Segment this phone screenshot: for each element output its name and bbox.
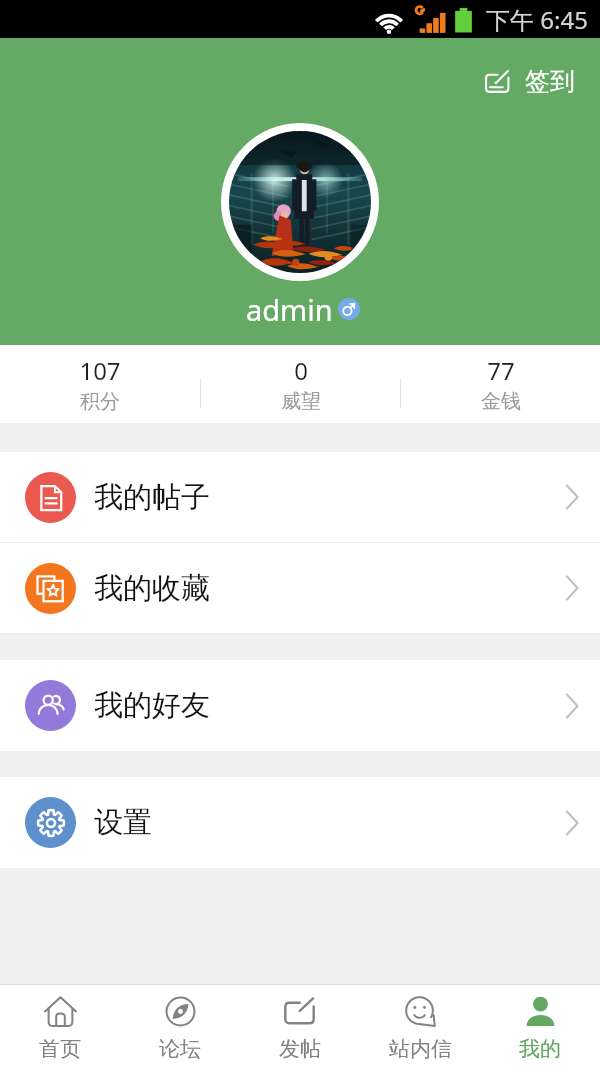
staticText: 设置	[94, 804, 152, 841]
button[interactable]: 我的帖子	[0, 452, 600, 542]
staticText: 下午 6:45	[486, 3, 588, 36]
staticText: 签到	[525, 66, 575, 97]
button[interactable]: Profile avatar	[221, 123, 379, 281]
button[interactable]: 论坛	[120, 985, 240, 1067]
staticText: 107	[79, 354, 121, 387]
staticText: admin	[246, 290, 333, 328]
button[interactable]: 我的	[480, 985, 600, 1067]
button[interactable]: 签到	[477, 60, 583, 103]
staticText: 威望	[281, 389, 321, 414]
staticText: 0	[294, 354, 308, 387]
button[interactable]: 77	[401, 345, 600, 423]
button[interactable]: 我的收藏	[0, 543, 600, 633]
staticText: 我的	[519, 1036, 561, 1062]
staticText: 77	[487, 354, 515, 387]
staticText: 论坛	[159, 1036, 201, 1062]
staticText: 站内信	[389, 1036, 452, 1062]
staticText: 首页	[39, 1036, 81, 1062]
button[interactable]: 0	[201, 345, 400, 423]
staticText: 积分	[80, 389, 120, 414]
button[interactable]: 首页	[0, 985, 120, 1067]
staticText: 我的好友	[94, 687, 210, 724]
staticText: 我的帖子	[94, 479, 210, 516]
button[interactable]: 107	[0, 345, 200, 423]
staticText: 金钱	[481, 389, 521, 414]
button[interactable]: 我的好友	[0, 660, 600, 751]
button[interactable]: 设置	[0, 777, 600, 868]
staticText: 发帖	[279, 1036, 321, 1062]
staticText: 我的收藏	[94, 570, 210, 607]
button[interactable]: 站内信	[360, 985, 480, 1067]
button[interactable]: 发帖	[240, 985, 360, 1067]
